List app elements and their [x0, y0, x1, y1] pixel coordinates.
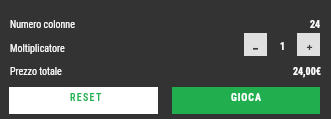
staticText: Numero colonne: [10, 19, 75, 31]
staticText: GIOCA: [231, 92, 262, 104]
button[interactable]: GIOCA: [172, 87, 320, 114]
button[interactable]: RESET: [9, 87, 158, 114]
staticText: RESET: [70, 92, 103, 104]
staticText: 24,00€: [293, 66, 321, 78]
button[interactable]: Decrease multiplier: [244, 33, 267, 56]
staticText: 1: [280, 41, 286, 53]
staticText: Prezzo totale: [10, 66, 62, 78]
staticText: Moltiplicatore: [10, 43, 65, 55]
staticText: 24: [310, 19, 321, 31]
button[interactable]: Increase multiplier: [297, 33, 320, 56]
